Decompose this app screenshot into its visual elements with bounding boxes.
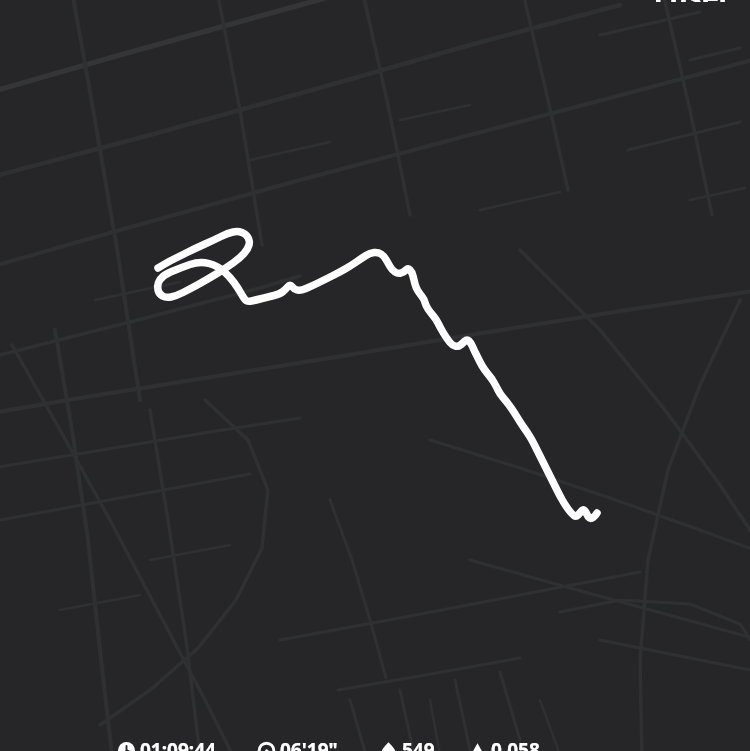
other: Pace — [258, 742, 275, 751]
staticText: 0.058 — [491, 737, 540, 751]
staticText: j user — [654, 0, 732, 2]
button[interactable]: Elevation — [469, 737, 540, 751]
button[interactable]: Pace — [258, 737, 338, 751]
button[interactable]: Calories — [380, 737, 435, 751]
button[interactable]: j user — [654, 0, 732, 2]
other: Duration — [118, 742, 135, 751]
staticText: 549 — [402, 737, 435, 751]
staticText: 01:09:44 — [140, 737, 216, 751]
staticText: 06'19" — [280, 737, 338, 751]
other: Calories — [380, 742, 397, 751]
other: Elevation — [469, 742, 486, 751]
button[interactable]: Duration — [118, 737, 216, 751]
